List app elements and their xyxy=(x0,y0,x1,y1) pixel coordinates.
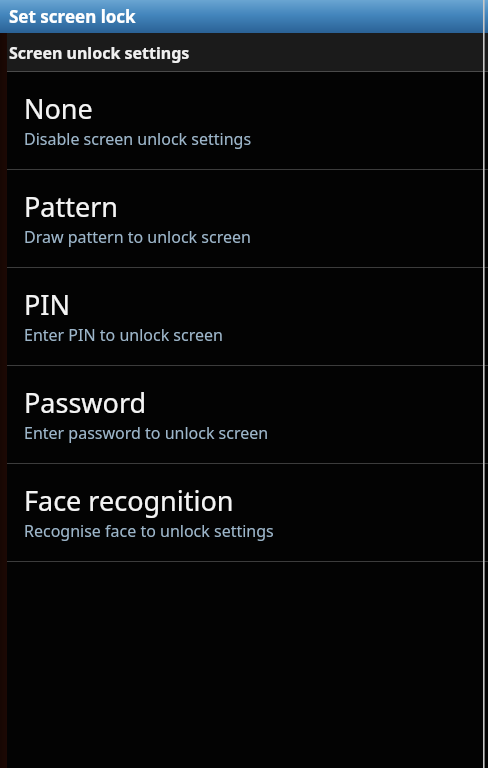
staticText: Recognise face to unlock settings xyxy=(24,520,274,542)
button[interactable]: None xyxy=(0,72,488,170)
button[interactable]: Pattern xyxy=(0,170,488,268)
button[interactable]: PIN xyxy=(0,268,488,366)
button[interactable]: Password xyxy=(0,366,488,464)
staticText: PIN xyxy=(24,286,71,323)
staticText: Enter password to unlock screen xyxy=(24,422,269,444)
staticText: Set screen lock xyxy=(9,5,136,28)
staticText: Password xyxy=(24,384,147,421)
staticText: Draw pattern to unlock screen xyxy=(24,226,251,248)
staticText: None xyxy=(24,90,93,127)
staticText: Pattern xyxy=(24,188,119,225)
staticText: Face recognition xyxy=(24,482,234,519)
staticText: Disable screen unlock settings xyxy=(24,128,252,150)
button[interactable]: Face recognition xyxy=(0,464,488,562)
staticText: Enter PIN to unlock screen xyxy=(24,324,223,346)
staticText: Screen unlock settings xyxy=(9,42,190,64)
